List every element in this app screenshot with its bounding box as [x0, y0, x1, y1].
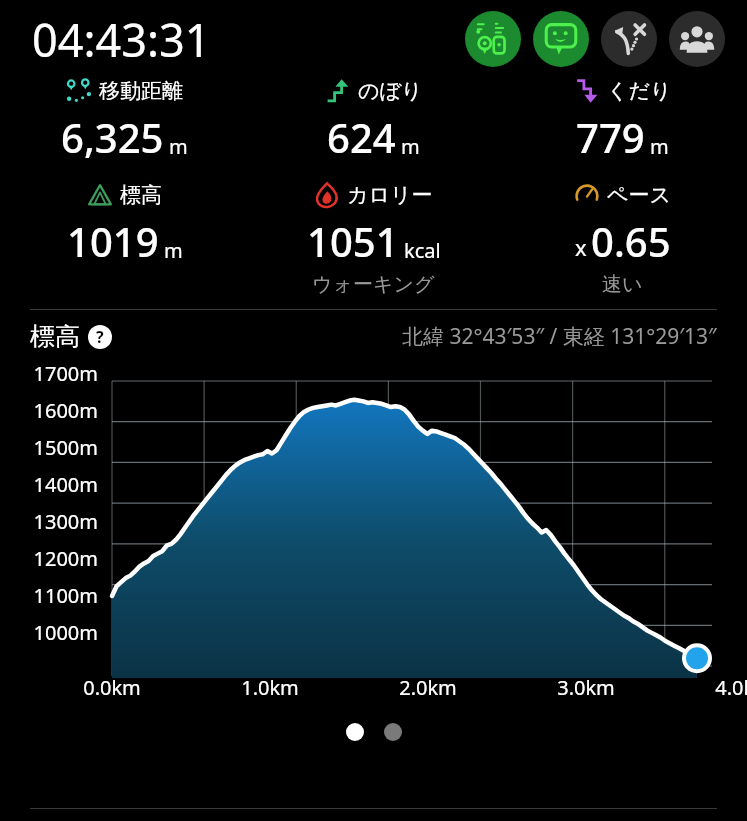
button[interactable]: 標高 [30, 321, 112, 352]
staticText: 標高 [120, 182, 162, 208]
staticText: 4.0km [711, 674, 747, 701]
staticText: 6,325 [61, 110, 164, 164]
staticText: m [650, 133, 669, 160]
staticText: 3.0km [553, 674, 619, 701]
staticText: ? [96, 326, 104, 348]
staticText: m [401, 133, 420, 160]
staticText: 779 [576, 110, 645, 164]
button[interactable]: Route off [601, 11, 657, 67]
button[interactable]: 標高 [0, 182, 249, 268]
staticText: 2.0km [395, 674, 461, 701]
button[interactable]: Group [669, 11, 725, 67]
staticText: 1700m [33, 360, 98, 387]
staticText: ペース [607, 182, 671, 208]
button[interactable]: くだり [498, 78, 747, 164]
staticText: 1051 [307, 214, 399, 268]
staticText: x [575, 232, 587, 262]
staticText: m [169, 133, 188, 160]
button[interactable]: ペース [498, 182, 747, 297]
button[interactable]: のぼり [249, 78, 498, 164]
staticText: 1019 [67, 214, 159, 268]
staticText: 0.65 [591, 214, 671, 268]
staticText: 1200m [33, 545, 98, 572]
staticText: ウォーキング [312, 272, 435, 297]
staticText: kcal [404, 237, 441, 264]
button[interactable]: 移動距離 [0, 78, 249, 164]
staticText: 624 [327, 110, 396, 164]
staticText: 1400m [33, 471, 98, 498]
button[interactable]: Page 1 [346, 723, 364, 741]
button[interactable]: カロリー [249, 182, 498, 297]
button[interactable]: Map markers [465, 11, 521, 67]
staticText: 1600m [33, 397, 98, 424]
staticText: 北緯 32°43′53″ / 東経 131°29′13″ [402, 322, 717, 351]
staticText: 1300m [33, 508, 98, 535]
staticText: 1000m [33, 619, 98, 646]
other: Help [88, 325, 112, 349]
staticText: 0.0km [79, 674, 145, 701]
staticText: 1.0km [237, 674, 303, 701]
staticText: 移動距離 [99, 78, 183, 104]
staticText: のぼり [358, 78, 423, 104]
staticText: 04:43:31 [32, 9, 211, 70]
staticText: m [164, 237, 183, 264]
staticText: 標高 [30, 321, 80, 352]
staticText: カロリー [347, 182, 433, 208]
staticText: くだり [607, 78, 672, 104]
button[interactable]: Messages [533, 11, 589, 67]
staticText: 1100m [33, 582, 98, 609]
staticText: 速い [602, 272, 643, 297]
button[interactable]: Page 2 [384, 723, 402, 741]
staticText: 1500m [33, 434, 98, 461]
